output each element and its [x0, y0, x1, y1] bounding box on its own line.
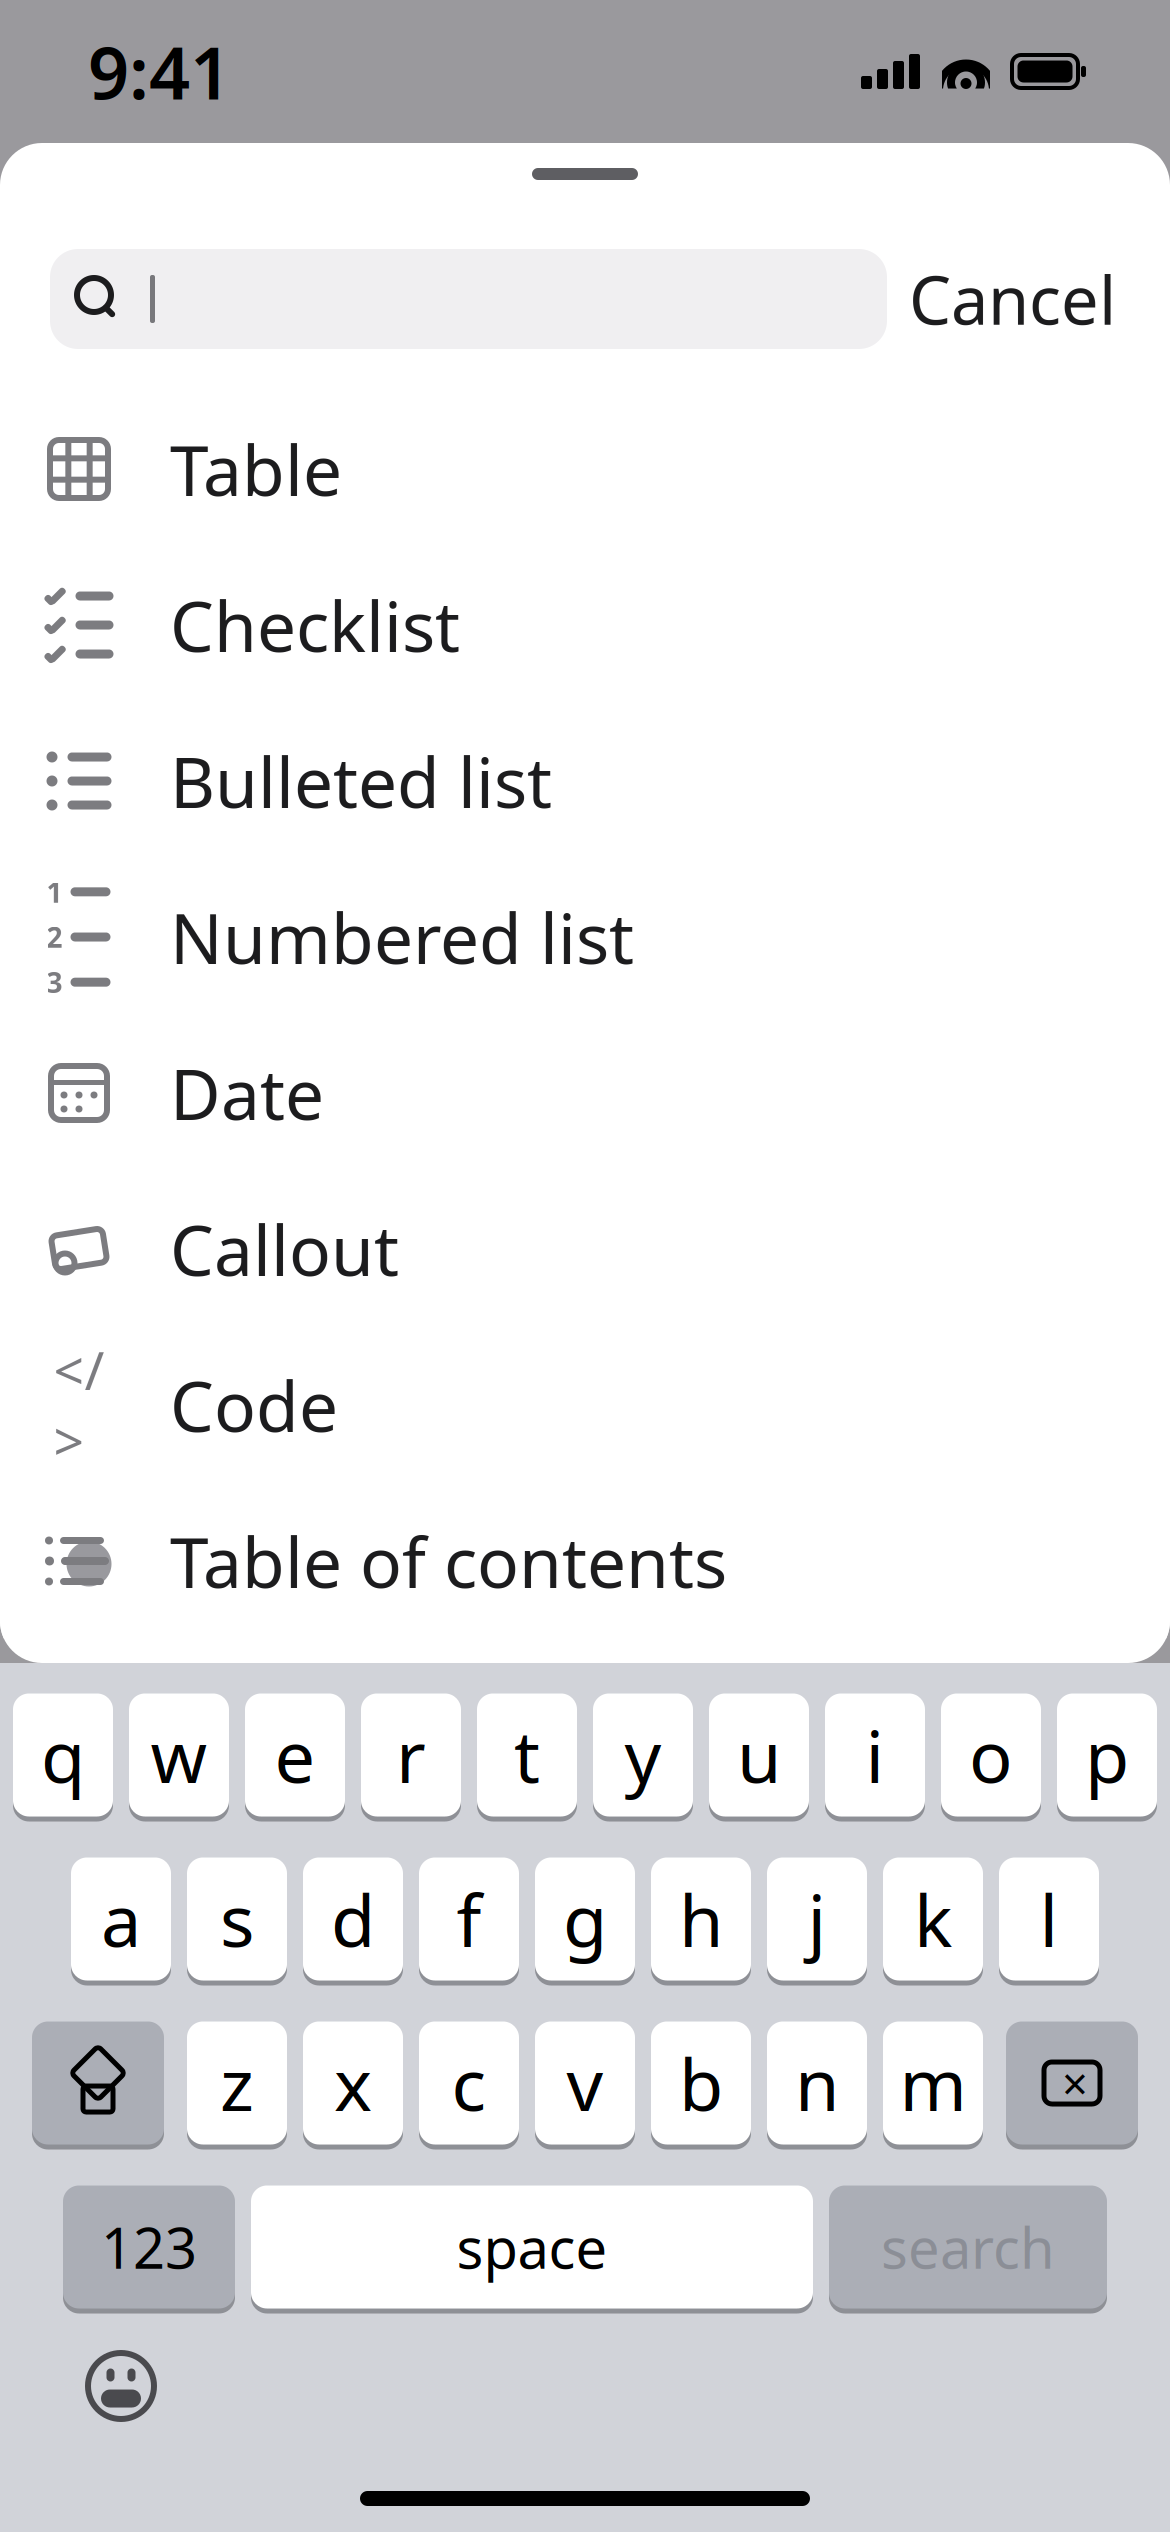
- button[interactable]: g: [535, 1855, 635, 1983]
- button[interactable]: j: [767, 1855, 867, 1983]
- button[interactable]: q: [13, 1691, 113, 1819]
- button[interactable]: p: [1057, 1691, 1157, 1819]
- button[interactable]: 123: [63, 2183, 235, 2311]
- button[interactable]: Table of contents: [0, 1483, 1170, 1639]
- button[interactable]: u: [709, 1691, 809, 1819]
- button[interactable]: b: [651, 2019, 751, 2147]
- staticText: k: [914, 1871, 952, 1967]
- staticText: q: [41, 1707, 85, 1803]
- staticText: 123: [101, 2210, 197, 2284]
- staticText: space: [456, 2210, 607, 2284]
- staticText: d: [331, 1871, 375, 1967]
- staticText: u: [737, 1707, 781, 1803]
- staticText: Numbered list: [170, 891, 634, 983]
- staticText: n: [795, 2035, 839, 2131]
- button[interactable]: e: [245, 1691, 345, 1819]
- button[interactable]: i: [825, 1691, 925, 1819]
- staticText: p: [1085, 1707, 1129, 1803]
- staticText: Checklist: [170, 579, 460, 671]
- staticText: h: [679, 1871, 723, 1967]
- staticText: 1: [46, 873, 62, 910]
- button[interactable]: a: [71, 1855, 171, 1983]
- button[interactable]: Checklist: [0, 547, 1170, 703]
- staticText: i: [865, 1707, 884, 1803]
- button[interactable]: Table: [0, 391, 1170, 547]
- button[interactable]: w: [129, 1691, 229, 1819]
- button[interactable]: Emoji: [78, 2343, 164, 2429]
- button[interactable]: x: [303, 2019, 403, 2147]
- staticText: Bulleted list: [170, 735, 552, 827]
- staticText: 2: [46, 918, 62, 956]
- button[interactable]: y: [593, 1691, 693, 1819]
- staticText: o: [969, 1707, 1013, 1803]
- button[interactable]: k: [883, 1855, 983, 1983]
- staticText: e: [274, 1707, 315, 1803]
- staticText: j: [807, 1871, 826, 1967]
- button[interactable]: 1: [0, 859, 1170, 1015]
- staticText: l: [1039, 1871, 1058, 1967]
- staticText: a: [101, 1871, 141, 1967]
- staticText: s: [220, 1871, 254, 1967]
- button[interactable]: f: [419, 1855, 519, 1983]
- button[interactable]: v: [535, 2019, 635, 2147]
- staticText: Table of contents: [170, 1515, 727, 1607]
- button[interactable]: </>: [0, 1327, 1170, 1483]
- staticText: x: [334, 2035, 372, 2131]
- button[interactable]: Delete: [1006, 2019, 1138, 2147]
- staticText: c: [451, 2035, 486, 2131]
- staticText: search: [881, 2210, 1055, 2284]
- staticText: w: [150, 1707, 207, 1803]
- button[interactable]: Bulleted list: [0, 703, 1170, 859]
- button[interactable]: h: [651, 1855, 751, 1983]
- staticText: Code: [170, 1359, 338, 1451]
- staticText: f: [456, 1871, 481, 1967]
- staticText: </>: [53, 1334, 104, 1476]
- staticText: 3: [46, 964, 62, 1001]
- button[interactable]: Callout: [0, 1171, 1170, 1327]
- button[interactable]: n: [767, 2019, 867, 2147]
- staticText: t: [514, 1707, 540, 1803]
- button[interactable]: o: [941, 1691, 1041, 1819]
- staticText: b: [679, 2035, 723, 2131]
- button[interactable]: r: [361, 1691, 461, 1819]
- staticText: ×: [1062, 2053, 1088, 2113]
- button[interactable]: space: [251, 2183, 813, 2311]
- button[interactable]: l: [999, 1855, 1099, 1983]
- button[interactable]: t: [477, 1691, 577, 1819]
- staticText: g: [563, 1871, 607, 1967]
- staticText: Table: [170, 423, 342, 515]
- staticText: m: [899, 2035, 966, 2131]
- button[interactable]: m: [883, 2019, 983, 2147]
- staticText: r: [396, 1707, 426, 1803]
- button[interactable]: Shift: [32, 2019, 164, 2147]
- staticText: Cancel: [909, 255, 1116, 343]
- staticText: y: [624, 1707, 661, 1803]
- button[interactable]: d: [303, 1855, 403, 1983]
- button[interactable]: c: [419, 2019, 519, 2147]
- staticText: z: [220, 2035, 254, 2131]
- button[interactable]: z: [187, 2019, 287, 2147]
- staticText: Callout: [170, 1203, 399, 1295]
- button[interactable]: Date: [0, 1015, 1170, 1171]
- staticText: Date: [170, 1047, 324, 1139]
- staticText: v: [566, 2035, 603, 2131]
- staticText: 9:41: [88, 24, 231, 119]
- button[interactable]: s: [187, 1855, 287, 1983]
- button[interactable]: Cancel: [887, 249, 1138, 349]
- button[interactable]: search: [829, 2183, 1107, 2311]
